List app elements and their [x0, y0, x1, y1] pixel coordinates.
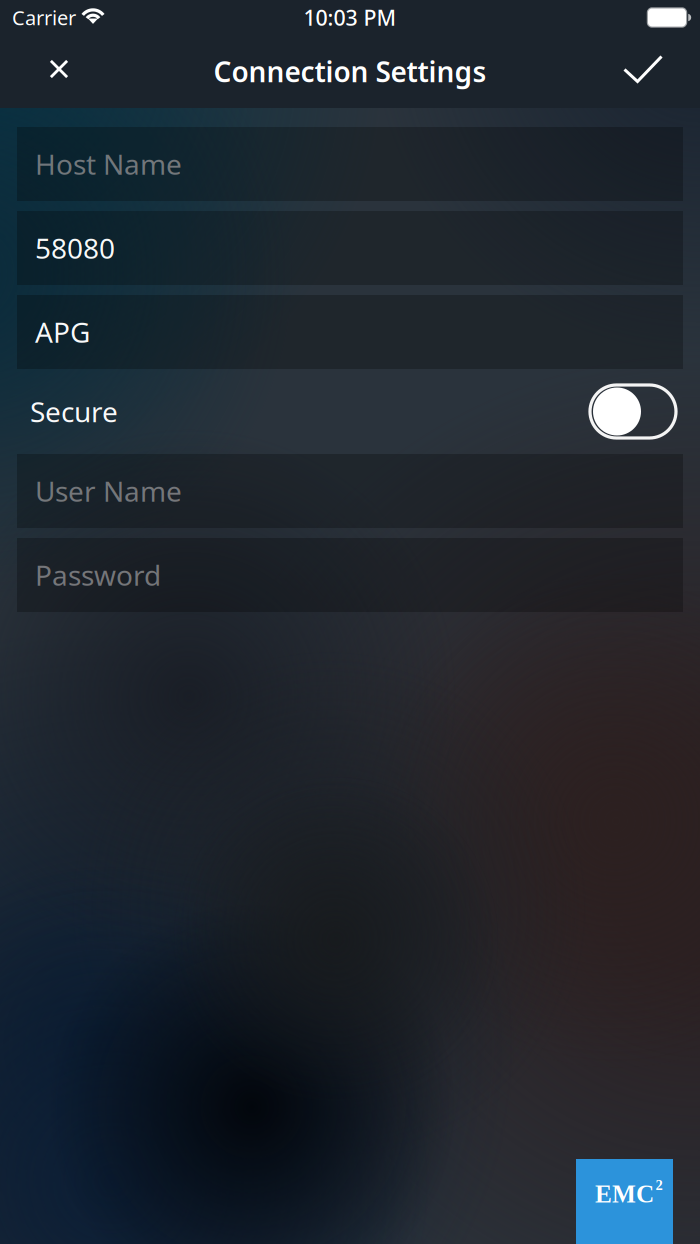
button[interactable]: Host Name: [17, 127, 683, 201]
staticText: Connection Settings: [213, 53, 486, 90]
button[interactable]: User Name: [17, 454, 683, 528]
staticText: Password: [35, 556, 161, 594]
staticText: User Name: [35, 472, 182, 510]
staticText: Secure: [30, 393, 118, 430]
staticText: APG: [35, 313, 90, 351]
button[interactable]: Close: [12, 35, 106, 108]
staticText: 2: [655, 1177, 662, 1193]
button[interactable]: Password: [17, 538, 683, 612]
staticText: Host Name: [35, 145, 182, 183]
staticText: 10:03 PM: [303, 3, 396, 32]
staticText: EMC: [595, 1180, 654, 1208]
button[interactable]: 58080: [17, 211, 683, 285]
button[interactable]: APG: [17, 295, 683, 369]
button[interactable]: Done: [598, 35, 688, 108]
staticText: 58080: [35, 229, 115, 267]
button[interactable]: Secure: [17, 379, 683, 444]
staticText: Carrier: [12, 4, 76, 31]
